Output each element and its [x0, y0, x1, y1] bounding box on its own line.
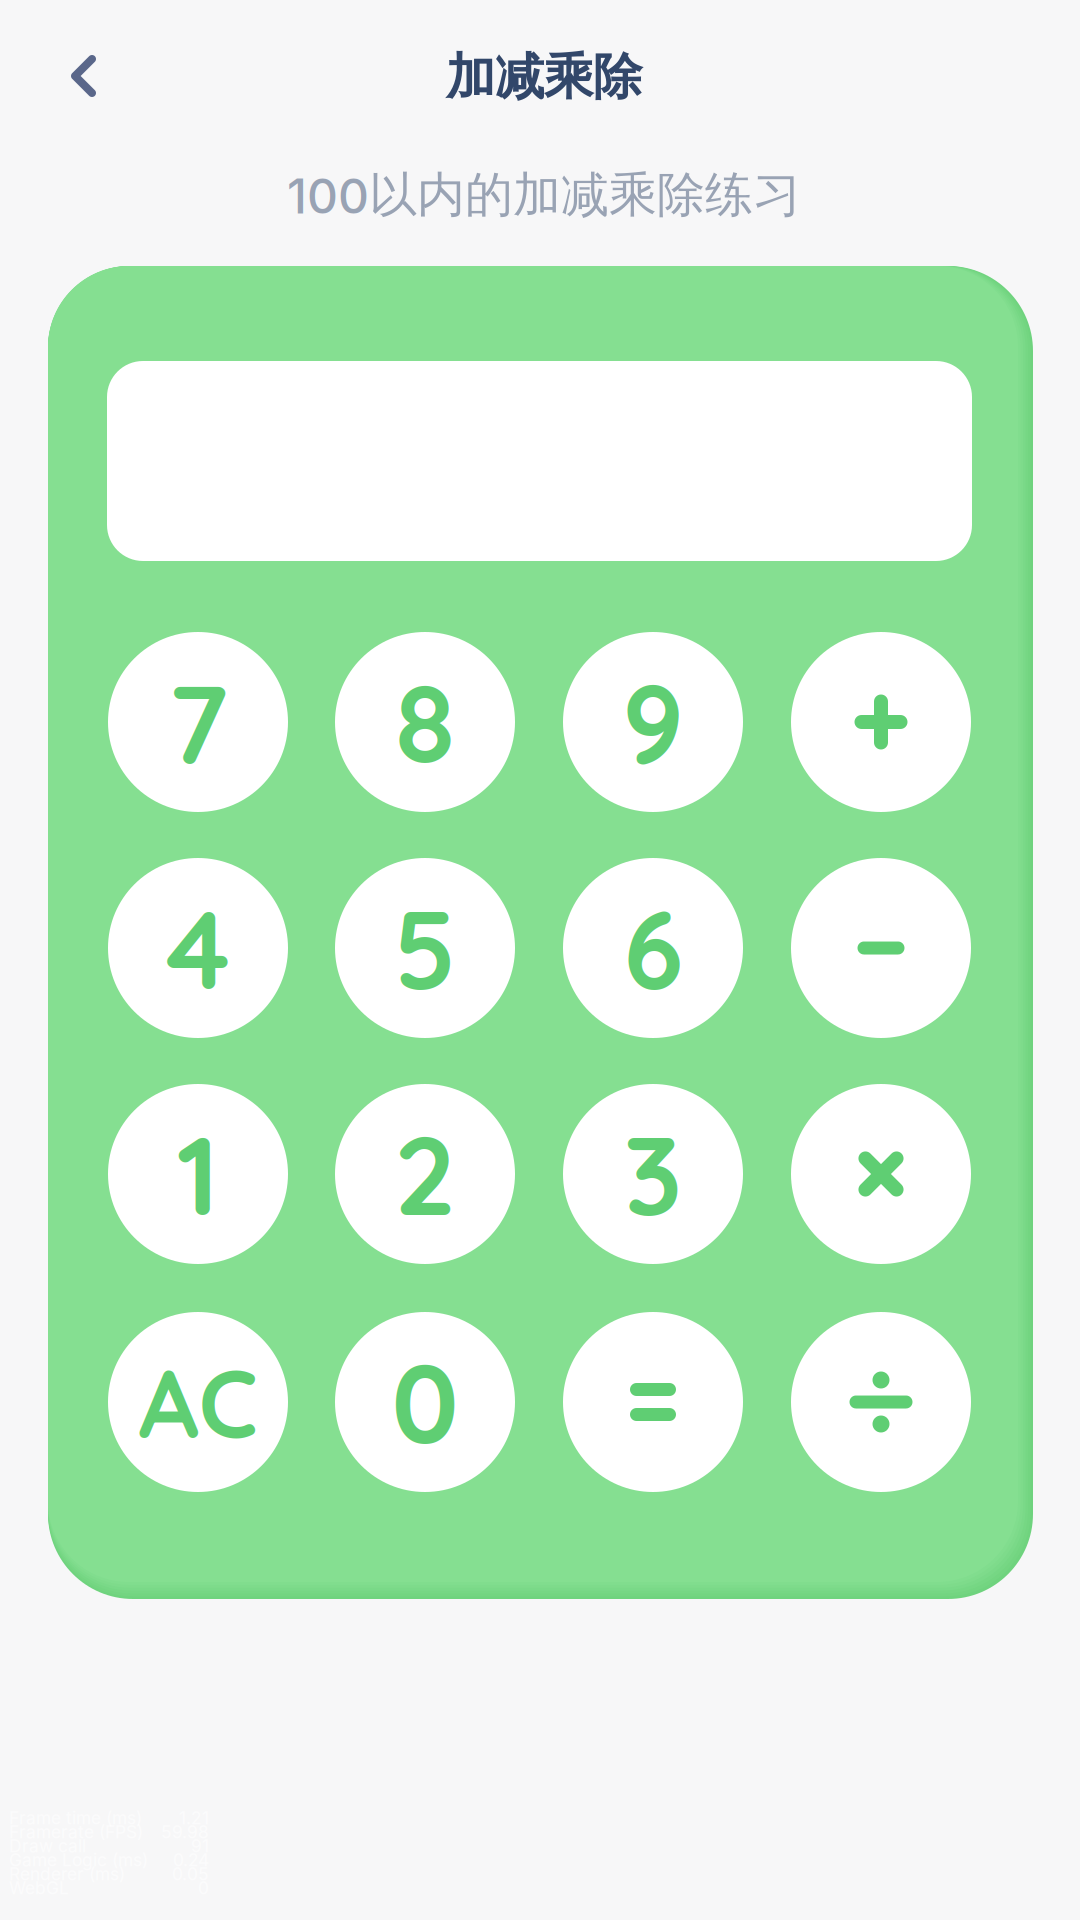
- staticText: 3: [623, 1106, 682, 1242]
- button[interactable]: Equals: [563, 1312, 743, 1492]
- button[interactable]: Divide: [791, 1312, 971, 1492]
- button[interactable]: Multiply: [791, 1084, 971, 1264]
- button[interactable]: Minus: [791, 858, 971, 1038]
- staticText: 8: [395, 654, 455, 790]
- staticText: 加减乘除: [446, 46, 642, 108]
- button[interactable]: 5: [335, 858, 515, 1038]
- button[interactable]: 1: [108, 1084, 288, 1264]
- staticText: 5: [393, 880, 456, 1016]
- staticText: 7: [168, 654, 228, 790]
- button[interactable]: 8: [335, 632, 515, 812]
- staticText: 2: [394, 1106, 456, 1242]
- staticText: 0: [391, 1334, 458, 1470]
- button[interactable]: 6: [563, 858, 743, 1038]
- button[interactable]: Back: [43, 27, 124, 125]
- button[interactable]: 4: [108, 858, 288, 1038]
- staticText: AC: [138, 1343, 257, 1461]
- staticText: 1: [176, 1106, 219, 1242]
- button[interactable]: Plus: [791, 632, 971, 812]
- button[interactable]: 0: [335, 1312, 515, 1492]
- button[interactable]: 9: [563, 632, 743, 812]
- staticText: 9: [622, 654, 684, 790]
- button[interactable]: 3: [563, 1084, 743, 1264]
- staticText: 100以内的加减乘除练习: [287, 165, 801, 225]
- staticText: 6: [623, 880, 683, 1016]
- button[interactable]: 7: [108, 632, 288, 812]
- button[interactable]: 2: [335, 1084, 515, 1264]
- staticText: 4: [166, 880, 230, 1016]
- button[interactable]: All clear: [108, 1312, 288, 1492]
